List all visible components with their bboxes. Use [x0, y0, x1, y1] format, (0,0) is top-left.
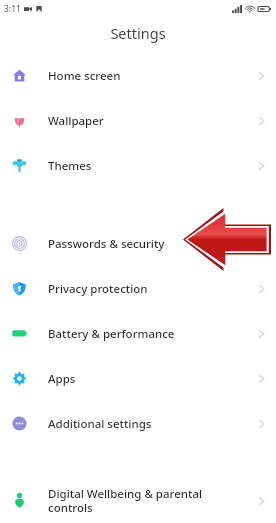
other: Annotation arrow pointing to Passwords &…	[0, 0, 276, 523]
button[interactable]: Themes	[0, 143, 276, 188]
button[interactable]: Privacy protection	[0, 266, 276, 311]
staticText: Home screen	[48, 68, 121, 84]
button[interactable]: Wallpaper	[0, 98, 276, 143]
staticText: Additional settings	[48, 416, 152, 432]
staticText: Settings	[110, 23, 166, 43]
button[interactable]: Passwords & security	[0, 221, 276, 266]
button[interactable]: Apps	[0, 356, 276, 401]
button[interactable]: Digital Wellbeing & parental controls	[0, 478, 276, 523]
staticText: Privacy protection	[48, 281, 148, 297]
staticText: Themes	[48, 158, 92, 174]
staticText: Apps	[48, 371, 76, 387]
staticText: Battery & performance	[48, 326, 175, 342]
staticText: 3:11	[4, 3, 21, 15]
staticText: Digital Wellbeing & parental controls	[48, 486, 203, 516]
button[interactable]: Battery & performance	[0, 311, 276, 356]
staticText: Passwords & security	[48, 236, 165, 252]
button[interactable]: Additional settings	[0, 401, 276, 446]
button[interactable]: Home screen	[0, 53, 276, 98]
staticText: Wallpaper	[48, 113, 104, 129]
